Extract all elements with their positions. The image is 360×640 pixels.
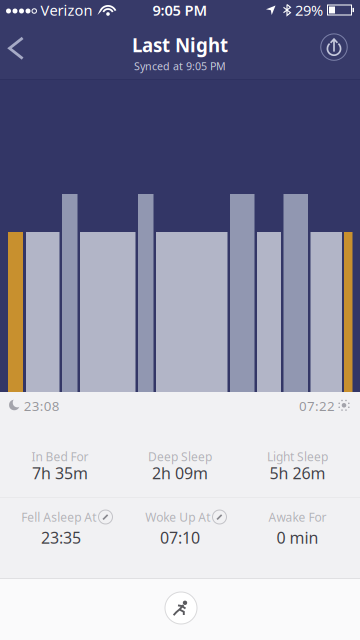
button[interactable]: Back (0, 29, 32, 68)
staticText: 2h 09m (152, 462, 208, 484)
staticText: 07:10 (160, 527, 200, 548)
staticText: 07:22 (299, 397, 335, 415)
staticText: Deep Sleep (148, 449, 212, 465)
staticText: Verizon (40, 0, 92, 20)
staticText: 29% (295, 0, 323, 20)
staticText: 9:05 PM (152, 0, 207, 20)
staticText: 5h 26m (269, 462, 325, 484)
staticText: Fell Asleep At (21, 509, 96, 525)
button[interactable]: Log workout (165, 592, 197, 624)
staticText: 23:08 (24, 397, 60, 415)
staticText: Last Night (132, 33, 228, 57)
staticText: Synced at 9:05 PM (134, 59, 226, 73)
staticText: 7h 35m (32, 462, 88, 484)
button[interactable]: Woke Up At (120, 498, 240, 578)
staticText: Woke Up At (145, 509, 210, 525)
staticText: Awake For (268, 509, 326, 525)
staticText: In Bed For (31, 449, 88, 465)
button[interactable]: Fell Asleep At (0, 498, 120, 578)
button[interactable]: Share (312, 26, 355, 69)
staticText: Light Sleep (267, 449, 328, 465)
staticText: 0 min (276, 527, 318, 548)
staticText: 23:35 (41, 527, 81, 548)
